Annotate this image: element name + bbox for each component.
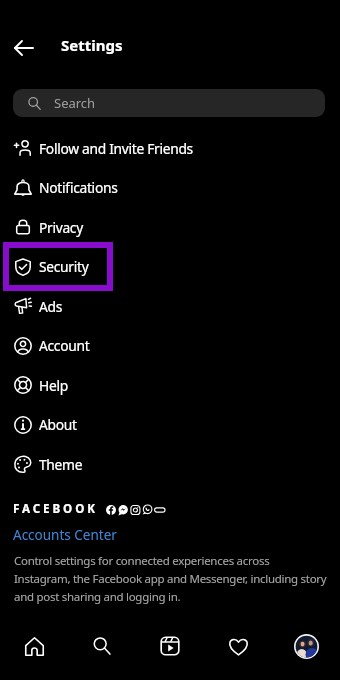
button[interactable]: Accounts Center bbox=[13, 526, 117, 544]
staticText: Accounts Center bbox=[13, 526, 117, 544]
button[interactable]: Search bbox=[68, 624, 136, 668]
button[interactable]: Likes bbox=[204, 624, 272, 668]
button[interactable]: Search bbox=[13, 89, 325, 117]
staticText: Theme bbox=[39, 455, 83, 474]
staticText: Follow and Invite Friends bbox=[39, 139, 193, 158]
staticText: Search bbox=[54, 94, 96, 112]
staticText: Privacy bbox=[39, 218, 83, 237]
staticText: Settings bbox=[61, 35, 123, 55]
staticText: Account bbox=[39, 336, 90, 355]
staticText: FACEBOOK bbox=[13, 501, 98, 517]
button[interactable]: Profile bbox=[272, 624, 340, 668]
button[interactable]: Reels bbox=[136, 624, 204, 668]
button[interactable]: Back bbox=[9, 33, 39, 63]
staticText: Ads bbox=[39, 297, 63, 316]
staticText: Control settings for connected experienc… bbox=[14, 553, 327, 604]
button[interactable]: Home bbox=[0, 624, 68, 668]
staticText: Help bbox=[39, 376, 68, 395]
staticText: Security bbox=[39, 257, 89, 276]
staticText: Notifications bbox=[39, 178, 118, 197]
button[interactable] bbox=[3, 242, 113, 291]
staticText: About bbox=[39, 415, 77, 434]
